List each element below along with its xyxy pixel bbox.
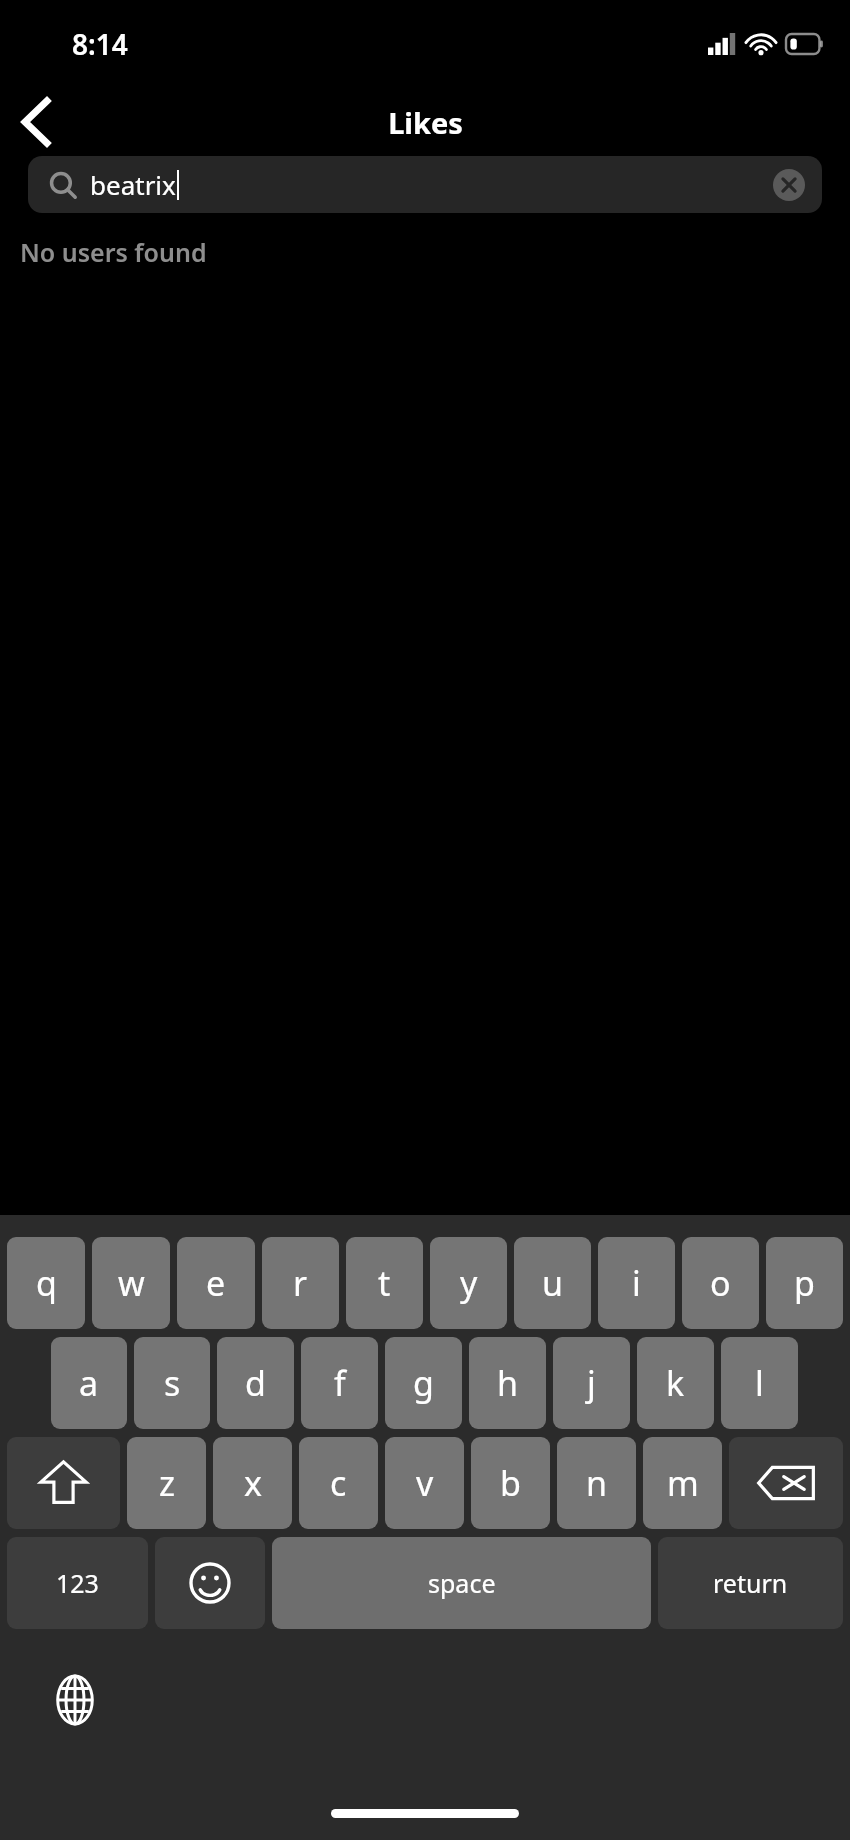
- button[interactable]: v: [385, 1437, 464, 1529]
- staticText: a: [79, 1360, 99, 1406]
- staticText: w: [118, 1260, 145, 1306]
- staticText: h: [497, 1360, 519, 1406]
- staticText: u: [542, 1260, 564, 1306]
- button[interactable]: d: [217, 1337, 294, 1429]
- button[interactable]: Back: [0, 88, 72, 156]
- button[interactable]: o: [682, 1237, 759, 1329]
- button[interactable]: s: [134, 1337, 210, 1429]
- button[interactable]: 123: [7, 1537, 148, 1629]
- button[interactable]: l: [721, 1337, 798, 1429]
- button[interactable]: u: [514, 1237, 591, 1329]
- staticText: t: [378, 1260, 391, 1306]
- staticText: y: [460, 1260, 478, 1306]
- staticText: s: [164, 1360, 181, 1406]
- staticText: return: [713, 1566, 788, 1600]
- staticText: e: [206, 1260, 226, 1306]
- button[interactable]: c: [299, 1437, 378, 1529]
- button[interactable]: z: [127, 1437, 206, 1529]
- staticText: No users found: [20, 235, 207, 269]
- button[interactable]: y: [430, 1237, 507, 1329]
- button[interactable]: beatrix: [28, 156, 822, 213]
- button[interactable]: b: [471, 1437, 550, 1529]
- staticText: n: [586, 1460, 608, 1506]
- button[interactable]: n: [557, 1437, 636, 1529]
- staticText: j: [587, 1360, 596, 1406]
- button[interactable]: i: [598, 1237, 675, 1329]
- button[interactable]: q: [7, 1237, 85, 1329]
- button[interactable]: return: [658, 1537, 843, 1629]
- staticText: k: [666, 1360, 685, 1406]
- staticText: o: [710, 1260, 731, 1306]
- button[interactable]: w: [92, 1237, 170, 1329]
- button[interactable]: x: [213, 1437, 292, 1529]
- button[interactable]: Shift: [7, 1437, 120, 1529]
- staticText: l: [755, 1360, 764, 1406]
- button[interactable]: m: [643, 1437, 722, 1529]
- staticText: p: [794, 1260, 815, 1306]
- button[interactable]: Backspace: [729, 1437, 843, 1529]
- staticText: m: [667, 1460, 699, 1506]
- button[interactable]: a: [51, 1337, 127, 1429]
- button[interactable]: Change keyboard language: [42, 1667, 108, 1733]
- staticText: q: [36, 1260, 57, 1306]
- button[interactable]: k: [637, 1337, 714, 1429]
- button[interactable]: space: [272, 1537, 651, 1629]
- button[interactable]: p: [766, 1237, 843, 1329]
- staticText: 8:14: [72, 25, 128, 63]
- staticText: b: [500, 1460, 521, 1506]
- button[interactable]: h: [469, 1337, 546, 1429]
- staticText: g: [413, 1360, 434, 1406]
- button[interactable]: f: [301, 1337, 378, 1429]
- staticText: i: [632, 1260, 641, 1306]
- button[interactable]: Clear search: [772, 168, 806, 202]
- staticText: x: [244, 1460, 262, 1506]
- staticText: beatrix: [90, 167, 176, 202]
- staticText: Likes: [388, 103, 463, 142]
- staticText: z: [159, 1460, 175, 1506]
- staticText: d: [245, 1360, 266, 1406]
- button[interactable]: g: [385, 1337, 462, 1429]
- button[interactable]: Emoji: [155, 1537, 265, 1629]
- button[interactable]: e: [177, 1237, 255, 1329]
- staticText: r: [293, 1260, 308, 1306]
- staticText: v: [416, 1460, 434, 1506]
- staticText: space: [428, 1566, 496, 1600]
- staticText: c: [330, 1460, 347, 1506]
- button[interactable]: t: [346, 1237, 423, 1329]
- staticText: f: [334, 1360, 346, 1406]
- button[interactable]: j: [553, 1337, 630, 1429]
- button[interactable]: r: [262, 1237, 339, 1329]
- staticText: 123: [56, 1566, 99, 1600]
